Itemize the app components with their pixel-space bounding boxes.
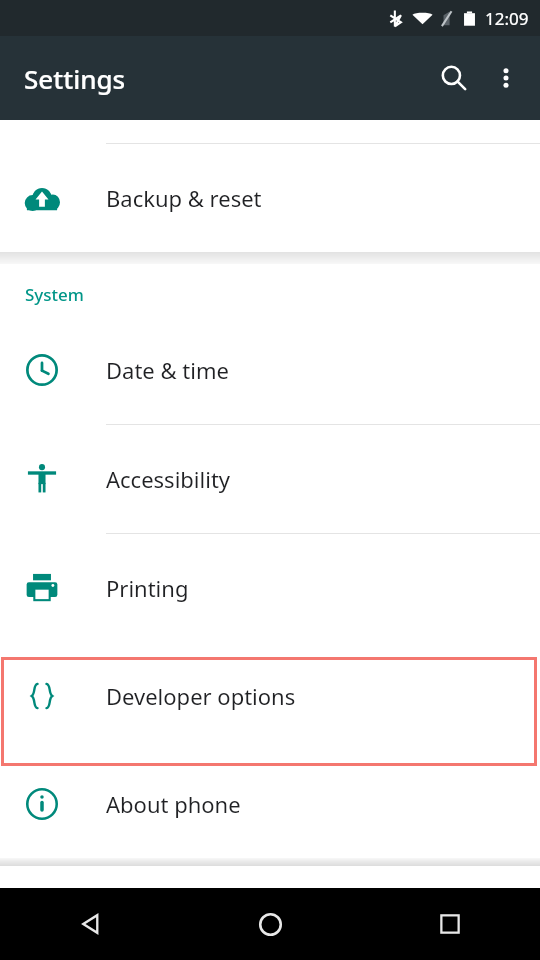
staticText: Printing <box>106 573 189 603</box>
staticText: System <box>25 283 84 306</box>
staticText: Settings <box>24 61 126 96</box>
button[interactable]: Recent apps <box>360 888 540 960</box>
staticText: Date & time <box>106 355 229 385</box>
staticText: Developer options <box>106 681 296 711</box>
button[interactable]: Date & time <box>0 316 540 424</box>
button[interactable]: Accessibility <box>0 425 540 533</box>
button[interactable]: Printing <box>0 534 540 642</box>
button[interactable]: Home <box>180 888 360 960</box>
staticText: Backup & reset <box>106 183 262 213</box>
button[interactable]: More options <box>480 52 532 104</box>
button[interactable]: Search <box>428 52 480 104</box>
staticText: 12:09 <box>485 7 529 30</box>
button[interactable]: Back <box>0 888 180 960</box>
button[interactable]: Developer options <box>0 642 540 750</box>
staticText: About phone <box>106 789 241 819</box>
staticText: Accessibility <box>106 464 231 494</box>
button[interactable]: About phone <box>0 750 540 858</box>
button[interactable]: Backup & reset <box>0 144 540 252</box>
